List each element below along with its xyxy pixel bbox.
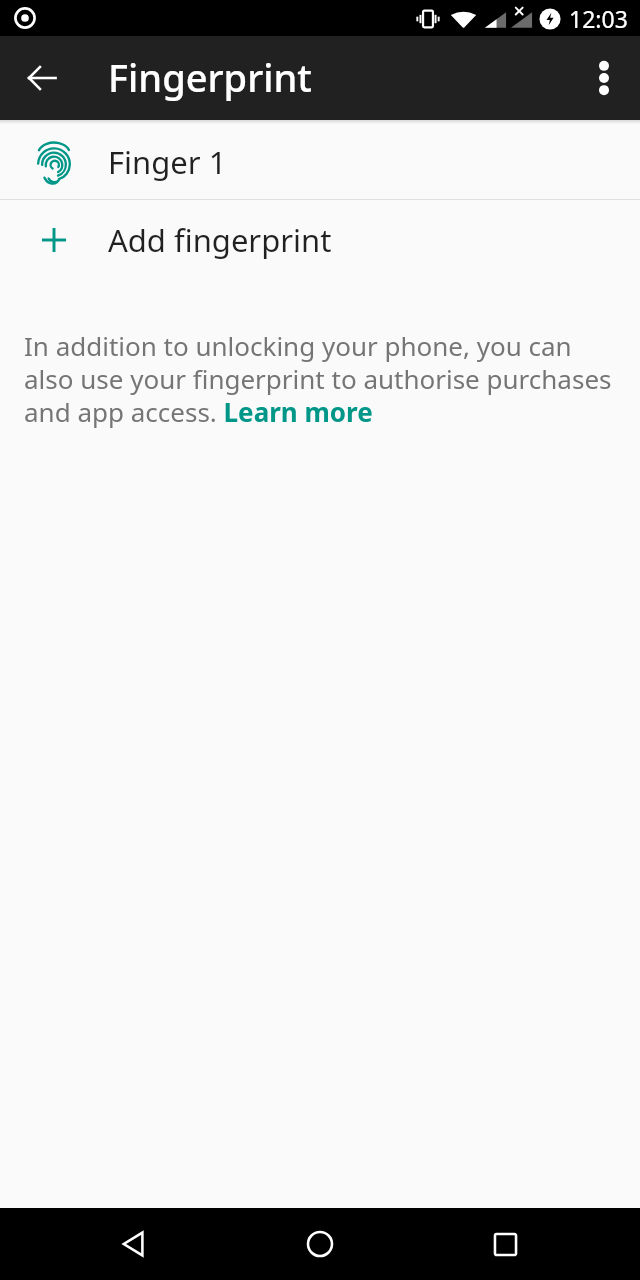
staticText: 12:03 [569, 3, 628, 34]
button[interactable]: Back [106, 1216, 162, 1272]
button[interactable]: Home [292, 1216, 348, 1272]
button[interactable]: In addition to unlocking your phone, you… [24, 328, 616, 430]
staticText: Finger 1 [108, 141, 227, 183]
button[interactable]: Recent apps [477, 1216, 533, 1272]
button[interactable]: Add fingerprint [0, 200, 640, 280]
button[interactable]: Finger 1 [0, 124, 640, 199]
staticText: Fingerprint [108, 51, 312, 103]
button[interactable]: Navigate up [14, 50, 70, 106]
staticText: Add fingerprint [108, 219, 332, 261]
staticText: In addition to unlocking your phone, you… [24, 328, 616, 430]
button[interactable]: More options [576, 50, 632, 106]
